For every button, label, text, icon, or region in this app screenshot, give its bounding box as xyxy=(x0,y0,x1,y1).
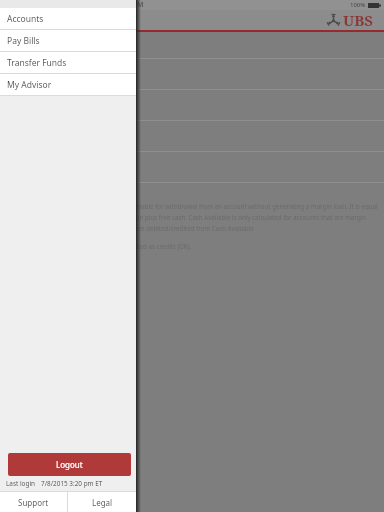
staticText: Support xyxy=(18,497,49,508)
staticText: eligible. Upon settlement date, balances… xyxy=(17,224,254,232)
button[interactable]: Transfer Funds xyxy=(0,52,136,74)
button[interactable]: Credit Card xyxy=(0,152,384,183)
staticText: 7/8/2015 3:20 pm ET xyxy=(41,479,103,488)
button[interactable]: Accounts xyxy=(0,8,136,30)
button[interactable]: Credit Line xyxy=(0,90,384,121)
staticText: 3:31 PM xyxy=(117,0,144,10)
button[interactable]: Support xyxy=(0,492,67,512)
staticText: Cash Available is the amount of funds av… xyxy=(17,202,378,210)
staticText: Pay Bills xyxy=(7,35,40,47)
button[interactable]: Investment xyxy=(0,59,384,90)
staticText: Transfer Funds xyxy=(7,57,67,69)
staticText: My Advisor xyxy=(7,79,52,91)
staticText: Menu xyxy=(17,14,42,26)
button[interactable]: My Advisor xyxy=(0,74,136,96)
staticText: 100% xyxy=(350,1,366,9)
staticText: Accounts xyxy=(7,13,44,25)
button[interactable]: Pay Bills xyxy=(0,30,136,52)
staticText: Positive Balances for Credit Line are de… xyxy=(17,242,191,250)
staticText: My Accounts xyxy=(17,39,72,51)
button[interactable]: Legal xyxy=(68,492,136,512)
button[interactable]: My Accounts xyxy=(0,32,384,59)
other: UBS logo xyxy=(326,13,341,28)
staticText: to Withdrawal Limit minus Available Marg… xyxy=(17,213,367,221)
staticText: Logout xyxy=(56,459,83,470)
button[interactable]: Mortgage xyxy=(0,121,384,152)
staticText: Legal xyxy=(92,497,113,508)
staticText: UBS xyxy=(343,10,373,30)
staticText: Last login xyxy=(6,479,36,488)
button[interactable]: Logout xyxy=(8,453,131,476)
staticText: Investment xyxy=(17,68,63,80)
